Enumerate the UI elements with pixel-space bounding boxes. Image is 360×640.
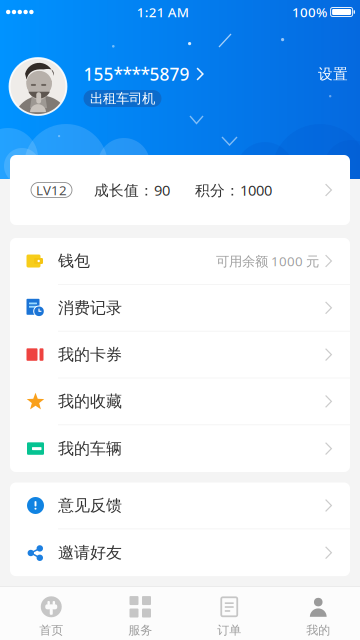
staticText: 成长值：90 <box>94 180 170 200</box>
staticText: LV12 <box>36 181 67 199</box>
button[interactable]: 意见反馈 <box>10 482 350 529</box>
staticText: 我的收藏 <box>58 392 122 411</box>
staticText: 我的车辆 <box>58 439 122 458</box>
staticText: 出租车司机 <box>90 90 155 107</box>
staticText: 服务 <box>128 623 152 637</box>
button[interactable]: 邀请好友 <box>10 529 350 576</box>
button[interactable]: 我的卡券 <box>10 332 350 378</box>
button[interactable]: 我的收藏 <box>10 378 350 425</box>
staticText: 邀请好友 <box>58 543 122 563</box>
button[interactable]: 我的车辆 <box>10 425 350 472</box>
button[interactable]: 设置 <box>318 57 348 85</box>
staticText: 我的卡券 <box>58 345 122 364</box>
staticText: 我的 <box>306 623 330 637</box>
staticText: 设置 <box>318 65 348 83</box>
staticText: 消费记录 <box>58 298 122 318</box>
staticText: 积分：1000 <box>195 180 272 200</box>
staticText: 1:21 AM <box>137 3 189 21</box>
button[interactable]: 消费记录 <box>10 285 350 332</box>
staticText: 首页 <box>39 623 63 637</box>
staticText: 100% <box>292 3 327 21</box>
staticText: 155****5879 <box>83 62 189 85</box>
button[interactable]: 首页 <box>7 587 96 640</box>
button[interactable]: 155****5879 <box>83 63 203 85</box>
button[interactable]: 我的 <box>274 587 360 640</box>
button[interactable]: 服务 <box>96 587 185 640</box>
staticText: 钱包 <box>58 251 90 271</box>
button[interactable]: 订单 <box>185 587 274 640</box>
staticText: 意见反馈 <box>58 496 122 515</box>
staticText: 订单 <box>217 623 241 637</box>
button[interactable]: 钱包 <box>10 238 350 285</box>
staticText: 可用余额 1000 元 <box>216 252 319 270</box>
button[interactable]: LV12 <box>10 155 350 225</box>
